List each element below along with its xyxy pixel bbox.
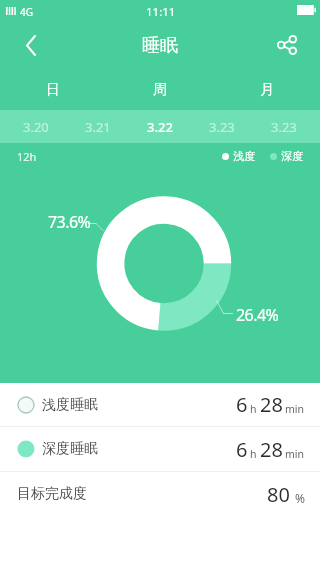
button[interactable]: 3.23 xyxy=(191,110,253,143)
button[interactable]: 深度睡眠 xyxy=(0,427,320,471)
staticText: 73.6% xyxy=(48,211,91,233)
staticText: 11:11 xyxy=(146,4,176,20)
staticText: 3.21 xyxy=(85,118,111,136)
staticText: 3.23 xyxy=(209,118,235,136)
staticText: 28 xyxy=(260,391,283,418)
staticText: 周 xyxy=(153,81,167,99)
button[interactable]: 周 xyxy=(106,68,213,110)
staticText: 深度 xyxy=(281,149,303,163)
staticText: 4G xyxy=(20,5,33,19)
staticText: h xyxy=(250,402,257,416)
staticText: 3.22 xyxy=(147,118,173,136)
staticText: min xyxy=(285,447,305,461)
staticText: 浅度 xyxy=(233,149,255,163)
button[interactable]: 3.22 xyxy=(129,110,191,143)
staticText: 3.20 xyxy=(23,118,49,136)
staticText: 目标完成度 xyxy=(17,485,87,503)
staticText: h xyxy=(250,447,257,461)
staticText: 日 xyxy=(46,81,60,99)
staticText: 3.23 xyxy=(271,118,297,136)
staticText: 12h xyxy=(17,149,37,164)
staticText: 6 xyxy=(236,391,248,418)
staticText: % xyxy=(295,490,305,506)
staticText: 浅度睡眠 xyxy=(42,396,98,414)
button[interactable]: 3.23 xyxy=(253,110,315,143)
staticText: 6 xyxy=(236,436,248,463)
button[interactable]: 3.21 xyxy=(67,110,129,143)
button[interactable]: 3.20 xyxy=(5,110,67,143)
staticText: 28 xyxy=(260,436,283,463)
button[interactable]: 浅度睡眠 xyxy=(0,383,320,426)
staticText: 26.4% xyxy=(236,304,279,326)
staticText: 睡眠 xyxy=(142,34,178,57)
button[interactable]: Share xyxy=(272,22,320,68)
staticText: 深度睡眠 xyxy=(42,440,98,458)
staticText: 80 xyxy=(267,481,290,508)
button[interactable]: 日 xyxy=(0,68,106,110)
button[interactable]: Back xyxy=(0,22,48,68)
staticText: 月 xyxy=(260,81,274,99)
staticText: min xyxy=(285,402,305,416)
button[interactable]: 月 xyxy=(213,68,320,110)
button[interactable]: 目标完成度 xyxy=(0,472,320,516)
